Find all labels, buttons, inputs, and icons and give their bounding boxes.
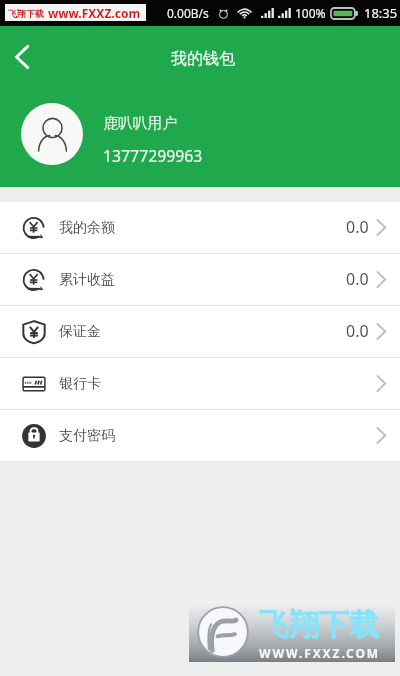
staticText: 支付密码: [59, 427, 115, 445]
staticText: 我的余额: [59, 219, 115, 237]
button[interactable]: 支付密码: [0, 410, 400, 461]
button[interactable]: 我的余额: [0, 202, 400, 253]
staticText: 13777299963: [103, 145, 203, 167]
staticText: 我的钱包: [171, 49, 235, 69]
staticText: 飞翔下载: [259, 606, 379, 644]
staticText: 0.0: [346, 320, 369, 342]
staticText: 鹿叭叭用户: [103, 114, 177, 133]
button[interactable]: 累计收益: [0, 254, 400, 305]
button[interactable]: 保证金: [0, 306, 400, 357]
staticText: 累计收益: [59, 271, 115, 289]
staticText: 100%: [295, 5, 326, 21]
staticText: 18:35: [364, 4, 398, 22]
staticText: 0.0: [346, 268, 369, 290]
staticText: 保证金: [59, 323, 101, 341]
button[interactable]: Back: [0, 35, 44, 79]
staticText: WWW.FXXZ.COM: [259, 645, 381, 661]
staticText: 0.00B/s: [167, 5, 209, 21]
staticText: 飞翔下载: [8, 8, 44, 19]
staticText: 0.0: [346, 216, 369, 238]
staticText: 银行卡: [59, 375, 101, 393]
staticText: www.FXXZ.com: [48, 5, 141, 21]
button[interactable]: 银行卡: [0, 358, 400, 409]
